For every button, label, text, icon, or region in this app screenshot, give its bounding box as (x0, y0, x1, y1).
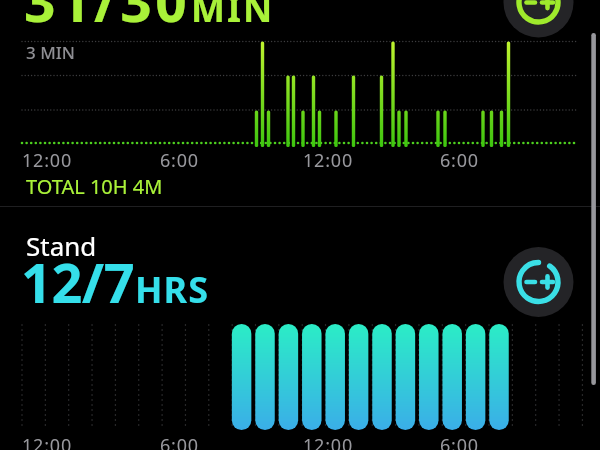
staticText: 12/7 (21, 245, 135, 319)
staticText: 31/30 (24, 0, 191, 38)
button[interactable] (503, 247, 573, 317)
staticText: 6:00 (440, 148, 479, 173)
staticText: 6:00 (160, 433, 199, 450)
staticText: 3 MIN (26, 41, 75, 64)
staticText: TOTAL 10H 4M (26, 173, 163, 200)
staticText: Stand (26, 228, 97, 263)
staticText: 12:00 (303, 433, 354, 450)
staticText: 6:00 (440, 433, 479, 450)
staticText: 12:00 (22, 433, 73, 450)
staticText: 12:00 (303, 148, 354, 173)
staticText: HRS (135, 265, 209, 314)
staticText: 6:00 (160, 148, 199, 173)
staticText: 12:00 (22, 148, 73, 173)
button[interactable] (503, 0, 573, 38)
staticText: MIN (191, 0, 275, 33)
